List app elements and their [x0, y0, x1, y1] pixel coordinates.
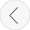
button[interactable]: Back	[0, 0, 30, 30]
